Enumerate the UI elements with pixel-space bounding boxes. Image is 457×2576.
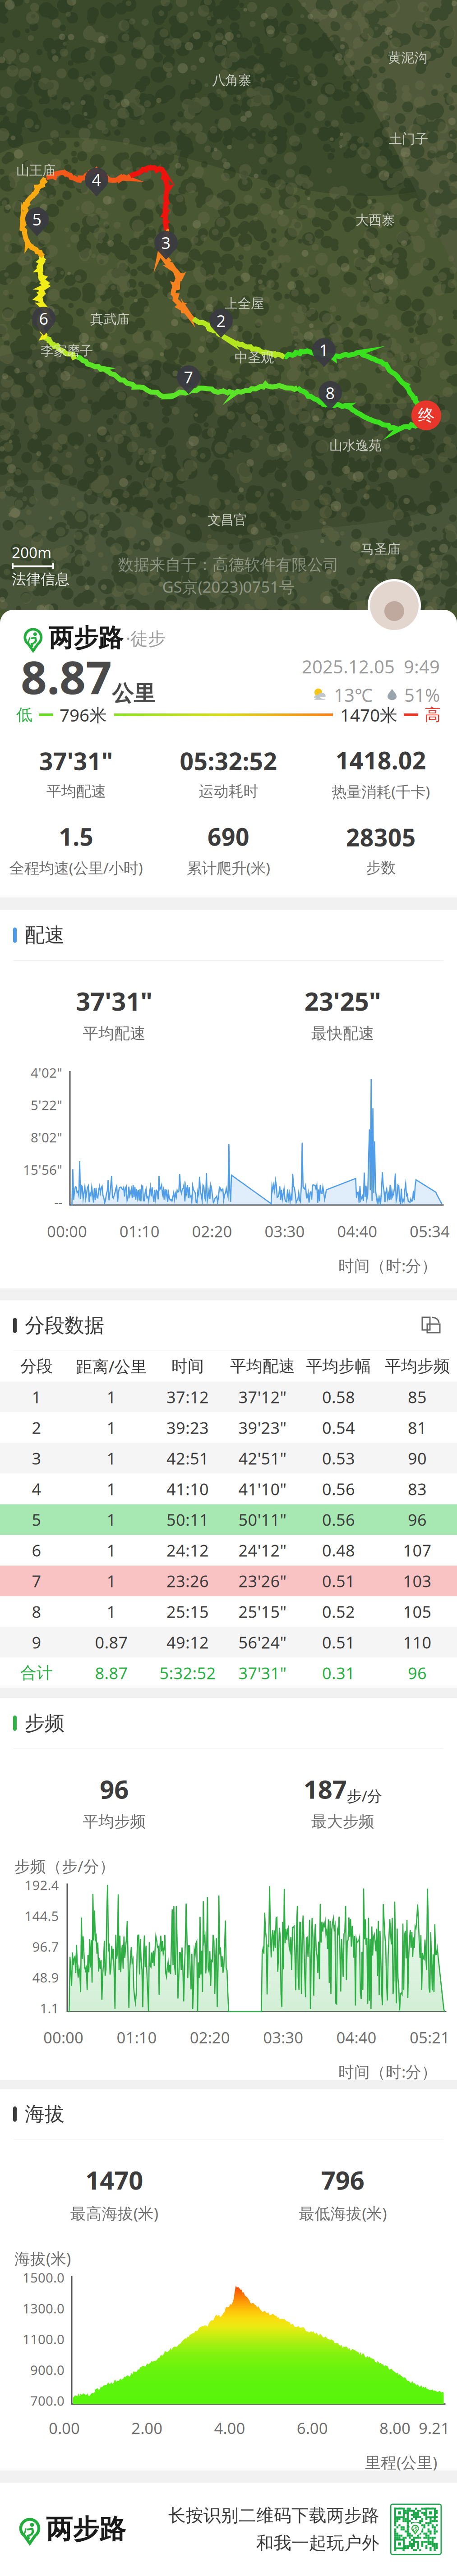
staticText: 黄泥沟 — [388, 50, 427, 66]
staticText: 48.9 — [32, 1969, 59, 1986]
staticText: 110 — [403, 1631, 432, 1653]
staticText: 法律信息 — [12, 570, 69, 588]
staticText: 步频 — [25, 1711, 65, 1735]
staticText: 上全屋 — [225, 295, 264, 312]
button[interactable]: User avatar — [368, 579, 421, 632]
staticText: 8'02" — [31, 1129, 62, 1146]
staticText: 1500.0 — [23, 2269, 65, 2286]
staticText: 海拔 — [25, 2102, 65, 2126]
staticText: 1 — [107, 1417, 116, 1438]
staticText: 0.00 — [49, 2418, 80, 2438]
staticText: 90 — [408, 1447, 427, 1469]
staticText: 05:34 — [410, 1221, 450, 1242]
staticText: 最低海拔(米) — [299, 2203, 387, 2224]
staticText: 最高海拔(米) — [70, 2203, 158, 2224]
staticText: 高 — [425, 705, 441, 725]
staticText: 37'12" — [238, 1386, 287, 1408]
staticText: 37'31" — [238, 1662, 287, 1684]
staticText: 时间（时:分） — [338, 1255, 437, 1276]
staticText: 土门子 — [389, 131, 428, 147]
staticText: 187 — [304, 1772, 347, 1806]
staticText: 23'25" — [304, 984, 381, 1018]
staticText: 37'31" — [39, 745, 113, 777]
staticText: 4'02" — [31, 1064, 62, 1081]
staticText: 0.54 — [322, 1417, 355, 1438]
staticText: 6 — [39, 308, 48, 329]
staticText: 96.7 — [32, 1938, 59, 1955]
staticText: 42:51 — [166, 1447, 209, 1469]
staticText: 3 — [161, 232, 171, 253]
staticText: 02:20 — [192, 1221, 232, 1242]
staticText: 和我一起玩户外 — [256, 2532, 379, 2554]
staticText: 0.52 — [322, 1601, 355, 1622]
staticText: 1 — [107, 1386, 116, 1408]
staticText: 0.56 — [322, 1509, 355, 1530]
staticText: 1470 — [85, 2163, 143, 2197]
staticText: 01:10 — [119, 1221, 160, 1242]
button[interactable]: Copy segment table — [418, 1315, 444, 1336]
staticText: GS京(2023)0751号 — [162, 576, 295, 597]
staticText: 39:23 — [166, 1417, 209, 1438]
staticText: 文昌官 — [208, 512, 247, 528]
staticText: -- — [54, 1193, 62, 1211]
staticText: 低 — [16, 705, 32, 725]
staticText: 8.87 — [21, 646, 112, 707]
staticText: 6 — [32, 1539, 41, 1561]
staticText: 运动耗时 — [199, 782, 258, 801]
staticText: 平均配速 — [83, 1024, 146, 1043]
staticText: 5 — [32, 1509, 41, 1530]
staticText: 28305 — [346, 821, 416, 853]
staticText: 2 — [32, 1417, 41, 1438]
staticText: 中圣观 — [235, 350, 274, 366]
staticText: 700.0 — [30, 2392, 65, 2409]
staticText: 分段 — [20, 1356, 53, 1376]
staticText: 5'22" — [31, 1096, 62, 1114]
staticText: 200m — [12, 542, 51, 562]
staticText: 0.58 — [322, 1386, 355, 1408]
staticText: 长按识别二维码下载两步路 — [168, 2505, 379, 2526]
staticText: 144.5 — [25, 1907, 59, 1925]
staticText: 1470米 — [340, 703, 397, 726]
staticText: 8 — [32, 1601, 41, 1622]
staticText: 1 — [107, 1447, 116, 1469]
staticText: 5 — [32, 208, 42, 230]
staticText: 85 — [408, 1386, 427, 1408]
staticText: 时间 — [171, 1356, 204, 1376]
staticText: 最快配速 — [311, 1024, 374, 1043]
staticText: 累计爬升(米) — [187, 858, 270, 878]
staticText: 42'51" — [238, 1447, 287, 1469]
staticText: 2.00 — [131, 2418, 162, 2438]
staticText: 49:12 — [166, 1631, 209, 1653]
staticText: 05:32:52 — [180, 745, 277, 777]
staticText: 15'56" — [23, 1161, 62, 1179]
staticText: 平均配速 — [46, 782, 106, 801]
staticText: 02:20 — [190, 2027, 230, 2048]
staticText: 03:30 — [263, 2027, 303, 2048]
staticText: 37:12 — [166, 1386, 209, 1408]
staticText: 25'15" — [238, 1601, 287, 1622]
staticText: 8.87 — [95, 1662, 128, 1684]
staticText: 两步路 — [49, 623, 123, 653]
staticText: 时间（时:分） — [338, 2061, 437, 2082]
staticText: 9.21 — [419, 2418, 450, 2438]
staticText: 56'24" — [238, 1631, 287, 1653]
staticText: 1 — [107, 1539, 116, 1561]
staticText: 1 — [319, 339, 329, 361]
staticText: 13℃ — [334, 683, 373, 707]
staticText: 50:11 — [166, 1509, 209, 1530]
staticText: 51% — [404, 683, 440, 707]
staticText: 796 — [321, 2163, 364, 2197]
staticText: 全程均速(公里/小时) — [9, 858, 143, 878]
staticText: 步数 — [366, 858, 396, 877]
staticText: 41:10 — [166, 1478, 209, 1500]
staticText: 05:21 — [410, 2027, 450, 2048]
staticText: 23:26 — [166, 1570, 209, 1592]
staticText: 1 — [32, 1386, 41, 1408]
staticText: 03:30 — [265, 1221, 305, 1242]
staticText: 96 — [408, 1509, 427, 1530]
staticText: 8.00 — [379, 2418, 411, 2438]
staticText: 105 — [403, 1601, 432, 1622]
staticText: 1300.0 — [23, 2300, 65, 2317]
staticText: 终 — [418, 405, 435, 426]
staticText: 山水逸苑 — [329, 437, 382, 454]
